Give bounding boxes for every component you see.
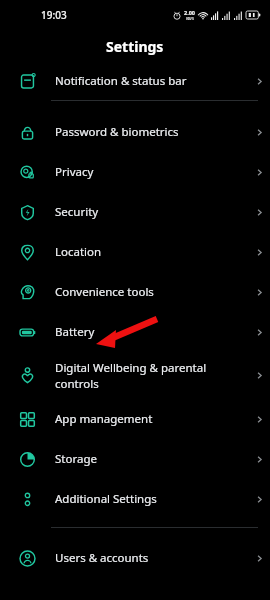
staticText: Convenience tools [55,284,230,300]
staticText: Storage [55,451,230,467]
button[interactable]: Security [0,192,270,232]
button[interactable]: Notification & status bar [0,62,270,100]
staticText: KB/S [186,16,194,21]
button[interactable]: Password & biometrics [0,112,270,152]
staticText: Password & biometrics [55,124,230,140]
staticText: Location [55,244,230,260]
button[interactable]: Digital Wellbeing & parental controls [0,352,270,399]
staticText: 2.00 [184,9,195,16]
button[interactable]: Battery [0,312,270,352]
button[interactable]: Additional Settings [0,479,270,519]
button[interactable]: Storage [0,439,270,479]
staticText: Settings [106,37,164,56]
staticText: Users & accounts [55,550,230,566]
button[interactable]: Privacy [0,152,270,192]
staticText: Additional Settings [55,491,230,507]
staticText: 19:03 [41,8,67,22]
staticText: Digital Wellbeing & parental controls [55,360,230,391]
button[interactable]: Convenience tools [0,272,270,312]
staticText: Battery [55,324,230,340]
button[interactable]: Location [0,232,270,272]
button[interactable]: App management [0,399,270,439]
staticText: Privacy [55,164,230,180]
button[interactable]: Users & accounts [0,538,270,578]
staticText: Notification & status bar [55,73,230,89]
staticText: App management [55,411,230,427]
staticText: Security [55,204,230,220]
